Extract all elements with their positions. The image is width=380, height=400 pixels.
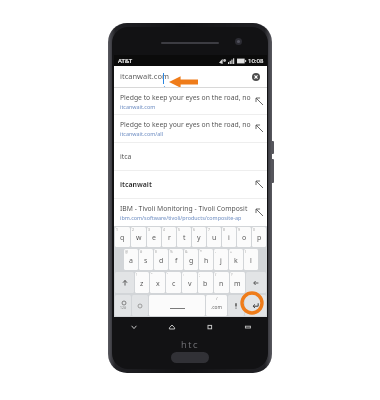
button[interactable]: 6	[192, 227, 206, 247]
button[interactable]: 1	[115, 227, 130, 247]
staticText: s	[144, 256, 148, 266]
staticText: 12#	[120, 305, 127, 310]
button[interactable]: Back	[114, 317, 153, 336]
staticText: h	[204, 256, 209, 266]
staticText: IBM - Tivoli Monitoring - Tivoli Composi…	[120, 204, 248, 213]
button[interactable]: '	[166, 272, 181, 293]
staticText: htc	[181, 338, 200, 351]
button[interactable]: Use suggestion	[252, 88, 267, 114]
staticText: %	[170, 249, 173, 254]
button[interactable]: Voice input	[228, 295, 244, 316]
staticText: '	[167, 272, 168, 277]
button[interactable]: More options	[229, 317, 267, 336]
button[interactable]: Clear text	[250, 71, 262, 83]
staticText: k	[234, 256, 238, 266]
staticText: 6	[193, 227, 195, 232]
staticText: r	[168, 233, 171, 243]
staticText: itcanwait.com	[120, 103, 156, 110]
staticText: 7	[208, 227, 210, 232]
button[interactable]: %	[169, 249, 183, 270]
button[interactable]: Enter	[245, 295, 266, 316]
staticText: 9	[238, 227, 240, 232]
staticText: i	[228, 233, 230, 243]
button[interactable]: Backspace	[246, 272, 266, 293]
staticText: Pledge to keep your eyes on the road, no	[120, 93, 251, 102]
staticText: itca	[120, 152, 132, 161]
button[interactable]: itcanwait.com	[114, 66, 267, 87]
staticText: u	[212, 233, 217, 243]
button[interactable]: 9	[237, 227, 251, 247]
button[interactable]: +	[229, 249, 243, 270]
staticText: t	[183, 233, 186, 243]
button[interactable]: &	[184, 249, 198, 270]
button[interactable]: 0	[252, 227, 266, 247]
staticText: 4	[163, 227, 165, 232]
staticText: AT&T	[118, 57, 133, 65]
button[interactable]: Recent apps	[191, 317, 229, 336]
button[interactable]: 2	[131, 227, 146, 247]
button[interactable]: 4	[162, 227, 176, 247]
button[interactable]: Use suggestion	[252, 199, 267, 226]
staticText: c	[172, 279, 176, 289]
staticText: #	[140, 249, 143, 254]
staticText: b	[203, 279, 208, 289]
staticText: 5	[178, 227, 180, 232]
button[interactable]: @	[124, 249, 138, 270]
staticText: !	[136, 272, 137, 277]
staticText: 8	[223, 227, 225, 232]
button[interactable]: /	[214, 272, 229, 293]
staticText: "	[151, 272, 153, 277]
button[interactable]: Keyboard settings	[132, 295, 148, 316]
button[interactable]: ?	[230, 272, 245, 293]
button[interactable]: *	[199, 249, 213, 270]
button[interactable]: Shift	[115, 272, 134, 293]
button[interactable]: :	[182, 272, 197, 293]
staticText: e	[152, 233, 156, 243]
staticText: 0	[253, 227, 255, 232]
button[interactable]: Pledge to keep your eyes on the road, no	[114, 115, 267, 142]
staticText: d	[159, 256, 164, 266]
button[interactable]: Space	[149, 295, 205, 316]
button[interactable]: $	[154, 249, 168, 270]
staticText: .com	[211, 304, 222, 311]
staticText: *	[200, 249, 202, 254]
staticText: j	[220, 256, 222, 266]
button[interactable]: Use suggestion	[252, 171, 267, 198]
staticText: n	[219, 279, 224, 289]
staticText: a	[129, 256, 133, 266]
button[interactable]: Symbols	[115, 295, 131, 316]
button[interactable]: -	[214, 249, 228, 270]
staticText: itcanwait.com	[120, 71, 169, 81]
button[interactable]: "	[150, 272, 165, 293]
button[interactable]: itcanwait	[114, 171, 267, 198]
staticText: +	[230, 249, 232, 254]
staticText: v	[188, 279, 192, 289]
button[interactable]: .com	[206, 295, 227, 316]
staticText: 3	[148, 227, 150, 232]
button[interactable]: Home	[153, 317, 191, 336]
staticText: y	[197, 233, 201, 243]
staticText: o	[242, 233, 247, 243]
staticText: ibm.com/software/tivoli/products/composi…	[120, 214, 242, 221]
button[interactable]: Use suggestion	[252, 115, 267, 142]
staticText: m	[234, 279, 241, 289]
staticText: z	[140, 279, 144, 289]
button[interactable]: Pledge to keep your eyes on the road, no	[114, 88, 267, 114]
staticText: f	[175, 256, 178, 266]
staticText: @	[125, 249, 129, 254]
button[interactable]: (	[244, 249, 258, 270]
staticText: q	[120, 233, 125, 243]
button[interactable]: 8	[222, 227, 236, 247]
button[interactable]: !	[135, 272, 149, 293]
staticText: x	[156, 279, 160, 289]
button[interactable]: itca	[114, 143, 267, 170]
button[interactable]: 5	[177, 227, 191, 247]
button[interactable]: IBM - Tivoli Monitoring - Tivoli Composi…	[114, 199, 267, 226]
staticText: ;	[199, 272, 200, 277]
staticText: /	[215, 272, 217, 277]
button[interactable]: 3	[147, 227, 161, 247]
button[interactable]: ;	[198, 272, 213, 293]
button[interactable]: 7	[207, 227, 221, 247]
button[interactable]: #	[139, 249, 153, 270]
